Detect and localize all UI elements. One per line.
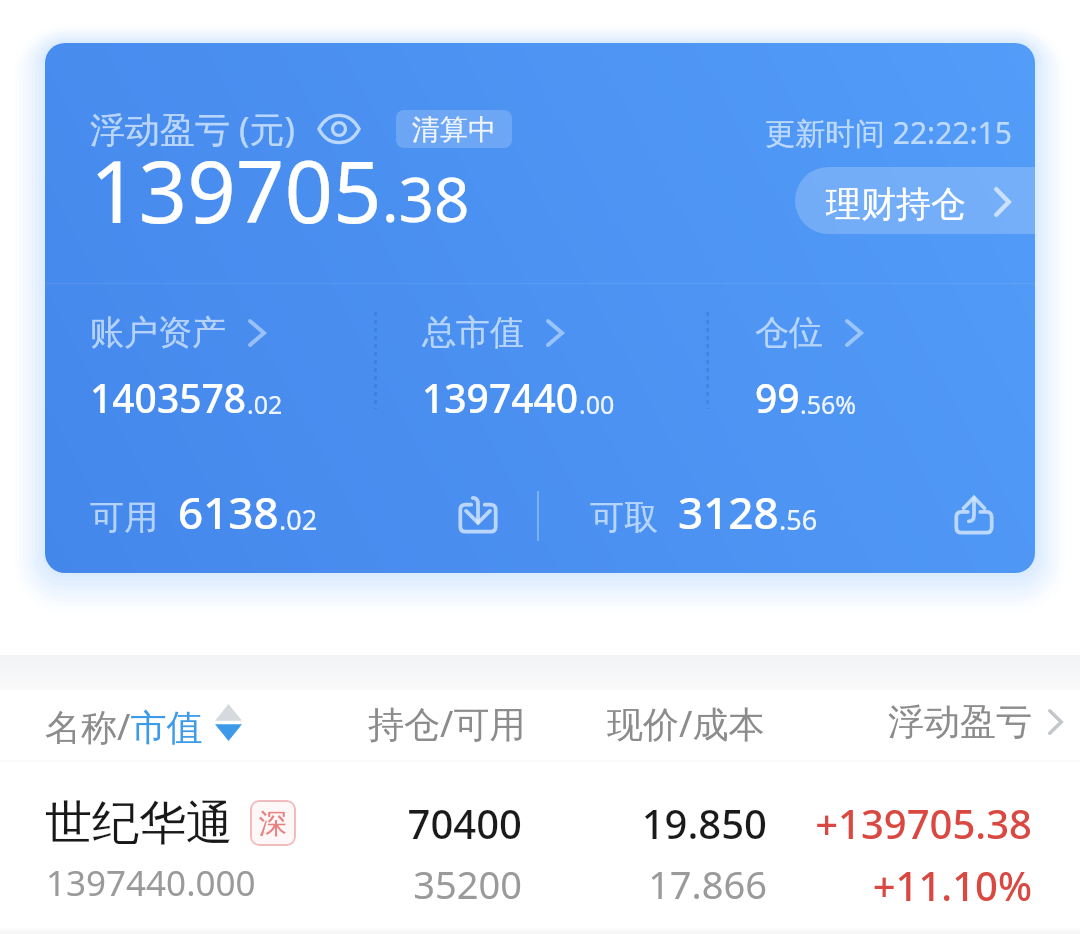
staticText: 深 <box>259 806 287 841</box>
staticText: .02 <box>279 501 318 538</box>
staticText: 可取 <box>590 496 658 539</box>
staticText: 35200 <box>300 858 522 910</box>
staticText: 理财持仓 <box>826 182 966 226</box>
staticText: 1397440 <box>422 371 579 424</box>
staticText: 6138 <box>178 482 279 542</box>
button[interactable]: Withdraw <box>941 481 1007 547</box>
staticText: .56% <box>800 387 857 421</box>
staticText: 名称/市值 <box>45 702 203 751</box>
staticText: 浮动盈亏 <box>888 699 1032 744</box>
staticText: 持仓/可用 <box>368 699 526 748</box>
staticText: 可用 <box>90 496 158 539</box>
staticText: .00 <box>579 387 615 421</box>
staticText: 3128 <box>678 482 779 542</box>
staticText: 19.850 <box>545 796 767 850</box>
button[interactable]: Toggle visibility <box>314 104 364 154</box>
button[interactable]: 账户资产 <box>90 311 390 424</box>
staticText: +139705.38 <box>780 796 1032 850</box>
button[interactable]: 名称/市值 <box>45 690 242 762</box>
staticText: 浮动盈亏 (元) <box>90 105 296 153</box>
staticText: 现价/成本 <box>607 699 765 748</box>
staticText: .56 <box>779 501 818 538</box>
button[interactable]: Deposit <box>445 481 511 547</box>
staticText: 更新时间 22:22:15 <box>765 112 1012 153</box>
staticText: +11.10% <box>780 858 1032 912</box>
staticText: 99 <box>755 371 800 424</box>
staticText: 世纪华通 <box>45 794 233 853</box>
staticText: 139705 <box>90 132 382 248</box>
staticText: 1397440.000 <box>46 859 256 907</box>
staticText: 仓位 <box>755 311 823 354</box>
staticText: 70400 <box>300 796 522 850</box>
staticText: 账户资产 <box>90 311 226 354</box>
staticText: .38 <box>382 156 470 240</box>
staticText: 清算中 <box>412 112 496 147</box>
button[interactable]: 总市值 <box>422 311 722 424</box>
button[interactable]: 理财持仓 <box>795 167 1035 234</box>
button[interactable]: 世纪华通 <box>0 763 1080 922</box>
button[interactable]: 仓位 <box>755 311 1035 424</box>
button[interactable]: 清算中 <box>396 110 512 148</box>
staticText: 1403578 <box>90 371 247 424</box>
staticText: 17.866 <box>545 858 767 910</box>
staticText: .02 <box>247 387 283 421</box>
staticText: 总市值 <box>422 311 524 354</box>
